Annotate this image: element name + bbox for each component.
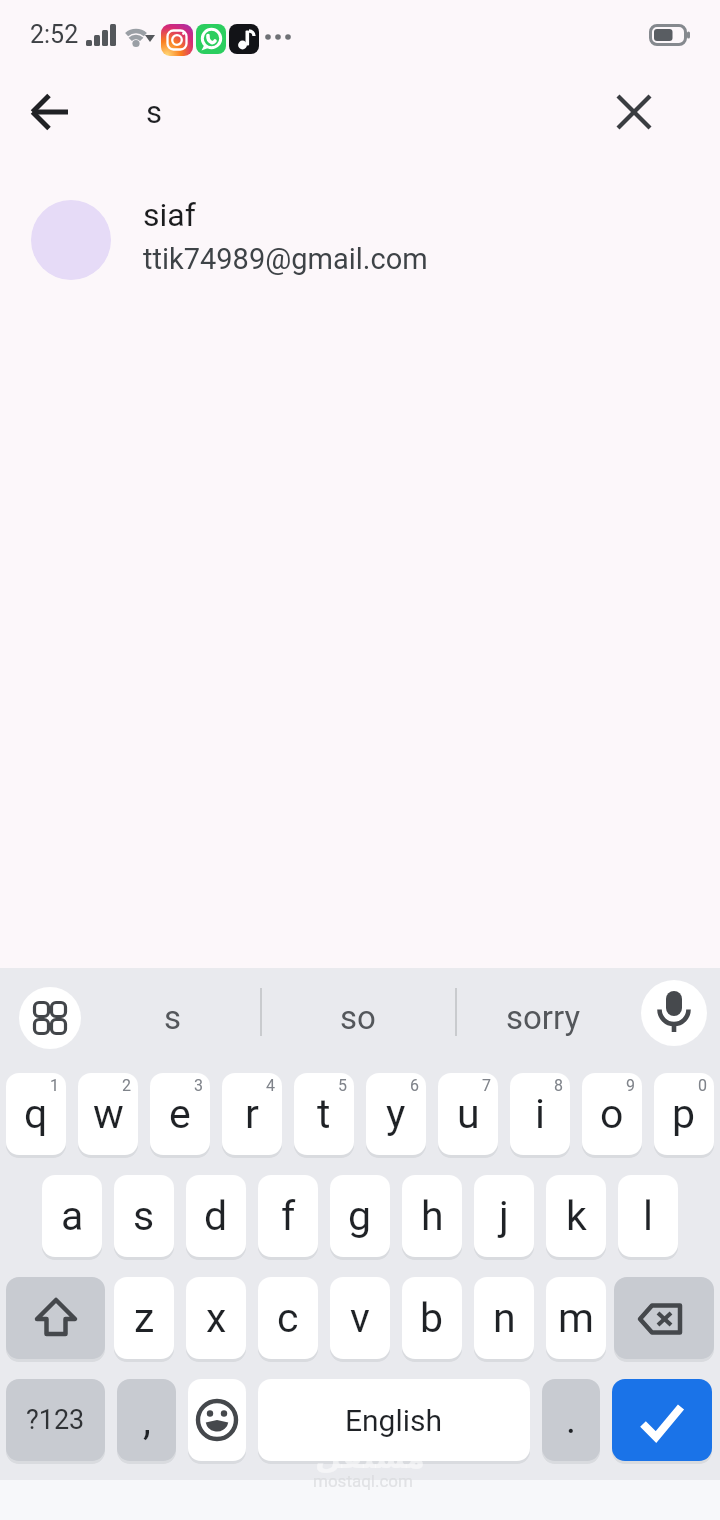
staticText: 0 <box>698 1076 707 1095</box>
staticText: a <box>61 1192 84 1240</box>
staticText: z <box>134 1294 155 1342</box>
staticText: 7 <box>482 1076 491 1095</box>
staticText: 4 <box>266 1076 275 1095</box>
staticText: i <box>535 1090 545 1138</box>
staticText: 2 <box>122 1076 131 1095</box>
staticText: 2:52 <box>30 20 79 49</box>
button[interactable]: g <box>330 1175 390 1257</box>
staticText: m <box>558 1294 594 1342</box>
button[interactable]: siaf <box>0 192 720 288</box>
button[interactable]: s <box>130 986 216 1048</box>
button[interactable]: o <box>582 1073 642 1155</box>
staticText: ?123 <box>26 1404 85 1436</box>
staticText: ttik74989@gmail.com <box>143 242 428 276</box>
staticText: x <box>206 1294 227 1342</box>
staticText: s <box>146 94 162 130</box>
staticText: h <box>421 1192 444 1240</box>
button[interactable]: q <box>6 1073 66 1155</box>
staticText: y <box>386 1090 406 1138</box>
staticText: so <box>340 998 376 1037</box>
button[interactable]: j <box>474 1175 534 1257</box>
button[interactable]: English <box>258 1379 530 1461</box>
staticText: j <box>499 1192 509 1240</box>
button[interactable]: c <box>258 1277 318 1359</box>
staticText: 8 <box>554 1076 563 1095</box>
button[interactable] <box>6 1277 105 1359</box>
staticText: e <box>169 1090 191 1138</box>
button[interactable]: n <box>474 1277 534 1359</box>
button[interactable]: u <box>438 1073 498 1155</box>
button[interactable]: l <box>618 1175 678 1257</box>
staticText: u <box>457 1090 480 1138</box>
button[interactable]: k <box>546 1175 606 1257</box>
staticText: . <box>566 1398 577 1443</box>
staticText: 5 <box>338 1076 347 1095</box>
staticText: l <box>643 1192 653 1240</box>
button[interactable]: z <box>114 1277 174 1359</box>
button[interactable]: ?123 <box>6 1379 105 1461</box>
button[interactable]: s <box>114 1175 174 1257</box>
button[interactable]: b <box>402 1277 462 1359</box>
button[interactable]: x <box>186 1277 246 1359</box>
staticText: مستقل <box>315 1440 425 1475</box>
staticText: s <box>133 1192 155 1240</box>
staticText: s <box>164 998 182 1037</box>
staticText: r <box>245 1090 259 1138</box>
button[interactable]: e <box>150 1073 210 1155</box>
button[interactable]: m <box>546 1277 606 1359</box>
staticText: English <box>345 1403 443 1438</box>
button[interactable]: t <box>294 1073 354 1155</box>
button[interactable]: w <box>78 1073 138 1155</box>
staticText: q <box>24 1090 48 1138</box>
button[interactable]: , <box>117 1379 176 1461</box>
button[interactable]: so <box>300 986 415 1048</box>
button[interactable]: i <box>510 1073 570 1155</box>
staticText: siaf <box>143 196 196 234</box>
staticText: g <box>348 1192 372 1240</box>
button[interactable]: h <box>402 1175 462 1257</box>
button[interactable] <box>26 86 78 138</box>
staticText: t <box>317 1090 331 1138</box>
staticText: f <box>281 1192 296 1240</box>
staticText: 1 <box>50 1076 59 1095</box>
staticText: k <box>566 1192 587 1240</box>
staticText: o <box>600 1090 624 1138</box>
staticText: 6 <box>410 1076 419 1095</box>
button[interactable]: y <box>366 1073 426 1155</box>
button[interactable]: . <box>542 1379 600 1461</box>
staticText: w <box>93 1090 124 1138</box>
button[interactable]: v <box>330 1277 390 1359</box>
button[interactable]: r <box>222 1073 282 1155</box>
staticText: n <box>493 1294 516 1342</box>
staticText: b <box>420 1294 444 1342</box>
button[interactable]: sorry <box>480 986 607 1048</box>
button[interactable]: f <box>258 1175 318 1257</box>
button[interactable]: a <box>42 1175 102 1257</box>
button[interactable] <box>19 987 81 1049</box>
staticText: , <box>143 1397 151 1444</box>
staticText: c <box>277 1294 299 1342</box>
staticText: 9 <box>626 1076 635 1095</box>
staticText: mostaql.com <box>313 1471 413 1491</box>
staticText: 3 <box>194 1076 203 1095</box>
staticText: v <box>350 1294 370 1342</box>
button[interactable] <box>641 980 707 1046</box>
button[interactable]: p <box>654 1073 714 1155</box>
staticText: p <box>672 1090 696 1138</box>
button[interactable] <box>188 1379 246 1461</box>
button[interactable] <box>612 1379 712 1461</box>
staticText: d <box>204 1192 228 1240</box>
button[interactable]: d <box>186 1175 246 1257</box>
button[interactable] <box>606 84 662 140</box>
staticText: sorry <box>506 998 581 1037</box>
button[interactable] <box>614 1277 714 1359</box>
